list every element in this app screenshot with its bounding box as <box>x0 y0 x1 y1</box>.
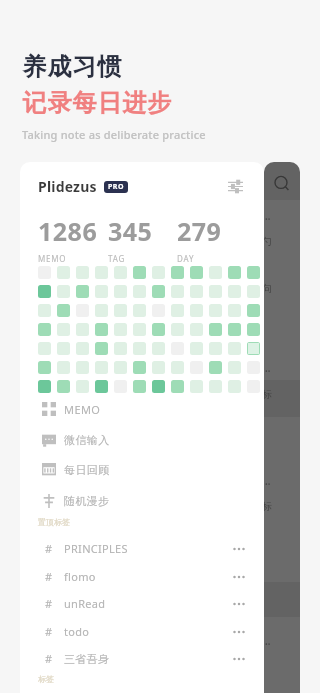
staticText: # <box>45 541 53 556</box>
staticText: 标签 <box>38 674 54 684</box>
staticText: MEMO <box>38 253 67 264</box>
staticText: 养成习惯 <box>22 52 122 82</box>
staticText: •• <box>265 480 271 490</box>
staticText: •• <box>265 215 271 225</box>
button[interactable]: MEMO <box>34 394 250 424</box>
button[interactable]: # <box>34 563 250 590</box>
staticText: 勺 <box>264 235 272 248</box>
button[interactable]: 345 <box>108 214 177 264</box>
staticText: todo <box>64 624 90 639</box>
staticText: 随机漫步 <box>64 494 110 508</box>
staticText: 标 <box>264 500 272 513</box>
button[interactable]: # <box>34 590 250 617</box>
staticText: 279 <box>177 214 222 248</box>
button[interactable]: # <box>34 535 250 562</box>
button[interactable]: More options <box>228 621 250 643</box>
staticText: # <box>45 651 53 666</box>
button[interactable]: 随机漫步 <box>34 486 250 516</box>
staticText: PRINCIPLES <box>64 541 128 556</box>
staticText: # <box>45 569 53 584</box>
staticText: 1286 <box>38 214 98 248</box>
staticText: # <box>45 596 53 611</box>
staticText: MEMO <box>64 402 101 417</box>
staticText: unRead <box>64 596 106 611</box>
staticText: 三省吾身 <box>64 652 110 666</box>
staticText: 句 <box>264 282 272 295</box>
staticText: 微信输入 <box>64 433 110 447</box>
staticText: Taking note as deliberate practice <box>22 127 206 142</box>
button[interactable]: # <box>34 645 250 672</box>
button[interactable]: More options <box>228 566 250 588</box>
button[interactable]: 279 <box>177 214 246 264</box>
button[interactable]: Plidezus <box>38 177 128 196</box>
staticText: 每日回顾 <box>64 463 110 477</box>
button[interactable]: 微信输入 <box>34 425 250 455</box>
staticText: •• <box>265 640 271 650</box>
button[interactable]: # <box>34 618 250 645</box>
staticText: flomo <box>64 569 96 584</box>
button[interactable]: Search <box>272 174 292 194</box>
staticText: 记录每日进步 <box>22 88 172 118</box>
staticText: PRO <box>108 182 124 192</box>
staticText: 标 <box>264 388 272 401</box>
button[interactable]: Settings <box>224 175 246 197</box>
staticText: Plidezus <box>38 177 97 196</box>
button[interactable]: More options <box>228 593 250 615</box>
staticText: # <box>45 624 53 639</box>
staticText: TAG <box>108 253 126 264</box>
button[interactable]: 每日回顾 <box>34 455 250 485</box>
button[interactable]: More options <box>228 648 250 670</box>
staticText: DAY <box>177 253 195 264</box>
staticText: 345 <box>108 214 153 248</box>
button[interactable]: More options <box>228 538 250 560</box>
button[interactable]: 1286 <box>38 214 108 264</box>
staticText: •• <box>265 367 271 377</box>
staticText: 置顶标签 <box>38 517 70 527</box>
